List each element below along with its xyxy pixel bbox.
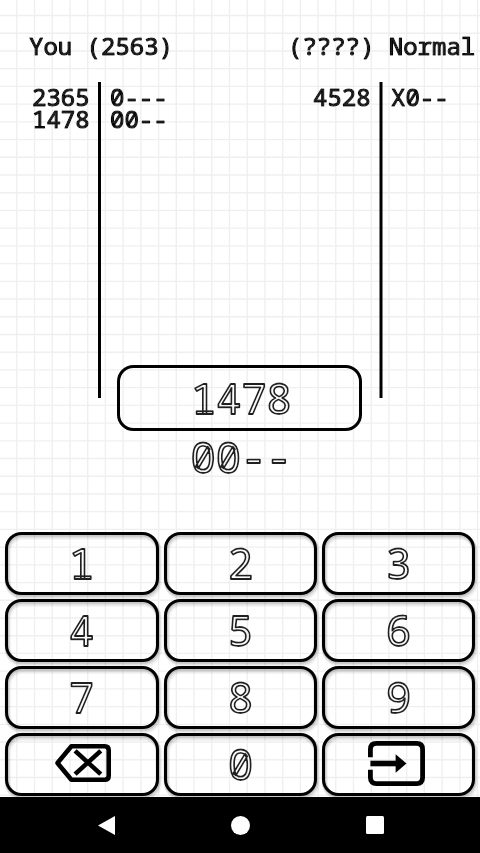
button[interactable]: Enter — [322, 733, 475, 796]
staticText: 8 — [228, 668, 254, 725]
staticText: 00-- — [110, 102, 168, 135]
staticText: 4528 — [313, 80, 371, 113]
staticText: 6 — [386, 601, 412, 658]
staticText: (????) Normal — [288, 29, 476, 62]
staticText: 4 — [69, 601, 95, 658]
button[interactable]: 7 — [5, 666, 159, 729]
staticText: You (2563) — [29, 29, 173, 62]
staticText: (????) Normal — [288, 29, 476, 62]
button[interactable]: 4 — [5, 599, 159, 662]
staticText: 00-- — [110, 102, 168, 135]
staticText: 1 — [69, 534, 95, 591]
staticText: 0--- — [110, 80, 168, 113]
staticText: 3 — [386, 534, 412, 591]
button[interactable]: 1478 — [117, 365, 362, 431]
button[interactable]: 1 — [5, 532, 159, 595]
staticText: 1478 — [191, 369, 292, 426]
button[interactable]: Home — [220, 805, 260, 845]
staticText: 0 — [228, 735, 254, 792]
staticText: 9 — [386, 668, 412, 725]
staticText: 2 — [228, 534, 254, 591]
staticText: 2365 — [32, 80, 90, 113]
staticText: X0-- — [391, 80, 449, 113]
button[interactable]: Recent apps — [355, 805, 395, 845]
staticText: 4528 — [313, 80, 371, 113]
button[interactable]: 3 — [322, 532, 475, 595]
staticText: 1478 — [32, 102, 90, 135]
staticText: 5 — [228, 601, 254, 658]
staticText: 7 — [69, 668, 95, 725]
button[interactable]: 0 — [164, 733, 317, 796]
staticText: You (2563) — [29, 29, 173, 62]
staticText: 2365 — [32, 80, 90, 113]
button[interactable]: 9 — [322, 666, 475, 729]
button[interactable]: 6 — [322, 599, 475, 662]
button[interactable]: Back — [86, 805, 126, 845]
button[interactable]: 2 — [164, 532, 317, 595]
button[interactable]: 8 — [164, 666, 317, 729]
staticText: 00-- — [1, 428, 480, 485]
button[interactable]: Backspace — [5, 733, 159, 796]
button[interactable]: 5 — [164, 599, 317, 662]
staticText: 0--- — [110, 80, 168, 113]
staticText: 1478 — [32, 102, 90, 135]
staticText: X0-- — [391, 80, 449, 113]
